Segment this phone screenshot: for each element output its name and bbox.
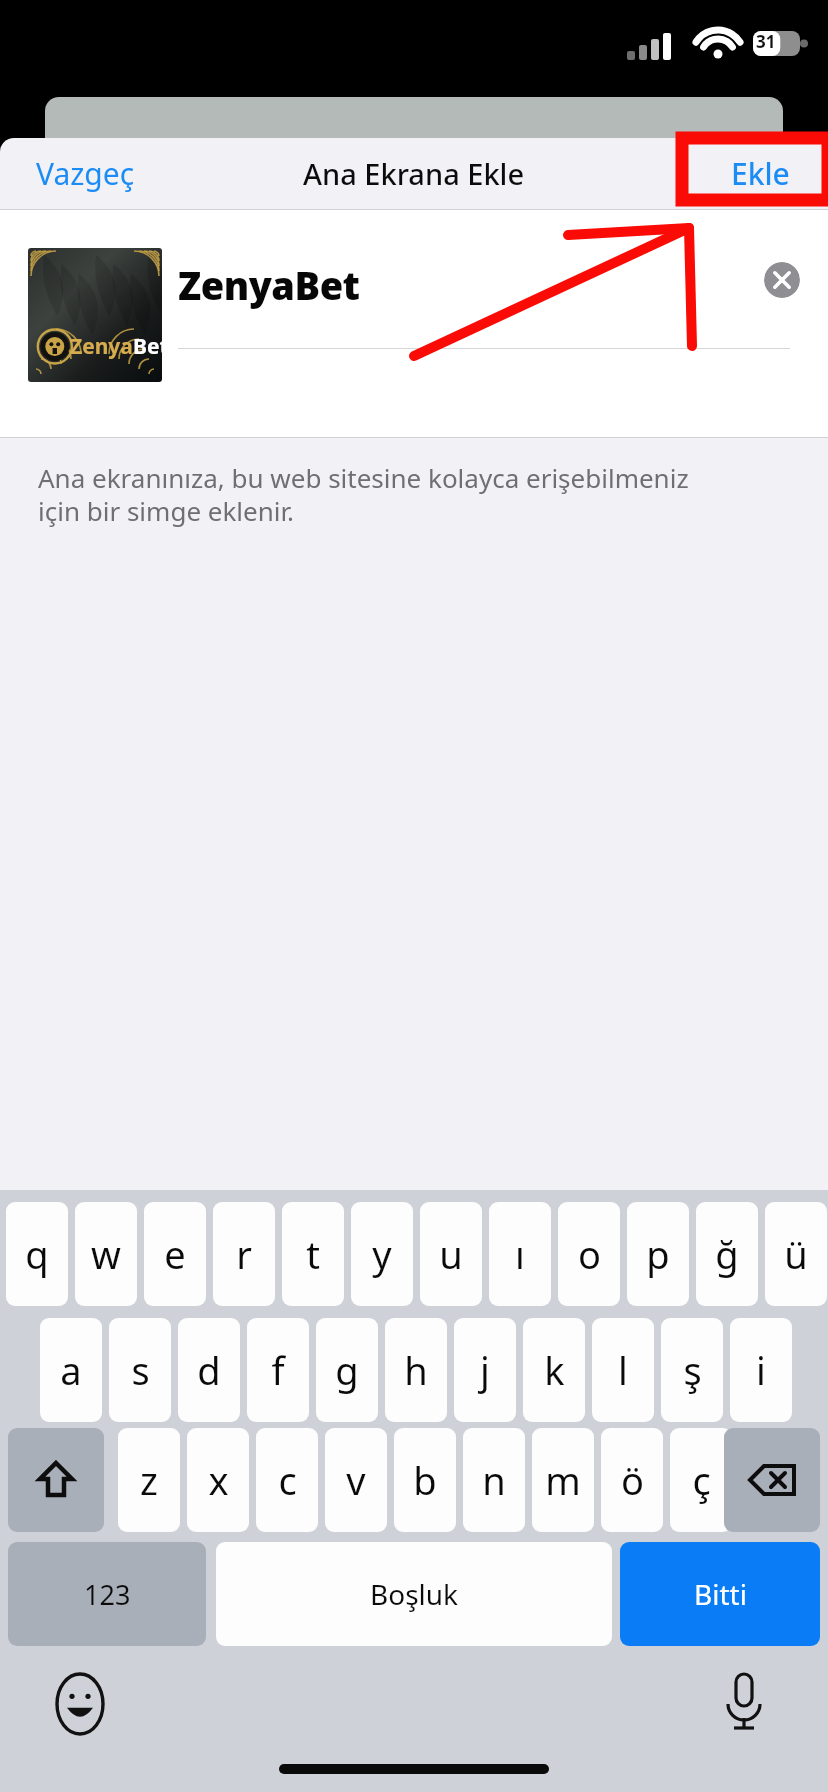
staticText: v: [346, 1454, 366, 1506]
staticText: p: [646, 1228, 670, 1280]
button[interactable]: h: [385, 1318, 447, 1422]
button[interactable]: o: [558, 1202, 620, 1306]
staticText: 31: [756, 30, 776, 53]
button[interactable]: Shift: [8, 1428, 104, 1532]
button[interactable]: j: [454, 1318, 516, 1422]
staticText: t: [306, 1228, 320, 1280]
staticText: n: [482, 1454, 506, 1506]
button[interactable]: Emoji: [48, 1672, 112, 1736]
staticText: s: [131, 1344, 150, 1396]
button[interactable]: a: [40, 1318, 102, 1422]
staticText: e: [164, 1228, 186, 1280]
button[interactable]: Ekle: [713, 143, 808, 204]
staticText: l: [618, 1344, 628, 1396]
button[interactable]: r: [213, 1202, 275, 1306]
staticText: 123: [84, 1576, 131, 1613]
button[interactable]: 123: [8, 1542, 206, 1646]
button[interactable]: z: [118, 1428, 180, 1532]
staticText: z: [140, 1454, 158, 1506]
button[interactable]: t: [282, 1202, 344, 1306]
staticText: ü: [784, 1228, 808, 1280]
staticText: ş: [683, 1344, 702, 1396]
button[interactable]: p: [627, 1202, 689, 1306]
button[interactable]: u: [420, 1202, 482, 1306]
staticText: Ana ekranınıza, bu web sitesine kolayca …: [38, 460, 698, 529]
button[interactable]: Vazgeç: [16, 143, 155, 204]
staticText: a: [60, 1344, 82, 1396]
staticText: h: [404, 1344, 428, 1396]
button[interactable]: Dikte: [712, 1668, 776, 1732]
button[interactable]: d: [178, 1318, 240, 1422]
button[interactable]: ş: [661, 1318, 723, 1422]
staticText: Bet: [133, 332, 162, 361]
button[interactable]: q: [6, 1202, 68, 1306]
staticText: m: [545, 1454, 581, 1506]
button[interactable]: n: [463, 1428, 525, 1532]
button[interactable]: Boşluk: [216, 1542, 612, 1646]
staticText: Boşluk: [370, 1575, 459, 1613]
staticText: Ekle: [731, 153, 790, 194]
button[interactable]: e: [144, 1202, 206, 1306]
staticText: ö: [621, 1454, 644, 1506]
staticText: k: [544, 1344, 565, 1396]
button[interactable]: v: [325, 1428, 387, 1532]
staticText: ZenyaBet: [178, 259, 360, 311]
staticText: o: [578, 1228, 601, 1280]
staticText: w: [91, 1228, 121, 1280]
staticText: Ana Ekrana Ekle: [303, 154, 525, 193]
button[interactable]: m: [532, 1428, 594, 1532]
button[interactable]: Bitti: [620, 1542, 820, 1646]
staticText: ı: [515, 1228, 525, 1280]
staticText: Bitti: [694, 1575, 747, 1613]
button[interactable]: l: [592, 1318, 654, 1422]
staticText: Zenya: [70, 332, 133, 361]
button[interactable]: ı: [489, 1202, 551, 1306]
button[interactable]: y: [351, 1202, 413, 1306]
button[interactable]: Temizle: [764, 262, 800, 298]
staticText: y: [372, 1228, 392, 1280]
staticText: ğ: [715, 1228, 739, 1280]
staticText: i: [756, 1344, 766, 1396]
button[interactable]: f: [247, 1318, 309, 1422]
button[interactable]: g: [316, 1318, 378, 1422]
button[interactable]: k: [523, 1318, 585, 1422]
staticText: f: [271, 1344, 285, 1396]
staticText: d: [197, 1344, 221, 1396]
staticText: b: [413, 1454, 437, 1506]
button[interactable]: i: [730, 1318, 792, 1422]
button[interactable]: x: [187, 1428, 249, 1532]
staticText: Vazgeç: [36, 153, 135, 194]
staticText: j: [480, 1344, 490, 1396]
button[interactable]: ç: [670, 1428, 732, 1532]
staticText: g: [335, 1344, 359, 1396]
button[interactable]: c: [256, 1428, 318, 1532]
staticText: c: [278, 1454, 297, 1506]
staticText: x: [208, 1454, 229, 1506]
button[interactable]: b: [394, 1428, 456, 1532]
staticText: q: [25, 1228, 49, 1280]
button[interactable]: Geri sil: [724, 1428, 820, 1532]
staticText: ç: [692, 1454, 711, 1506]
button[interactable]: ü: [765, 1202, 827, 1306]
button[interactable]: ğ: [696, 1202, 758, 1306]
button[interactable]: s: [109, 1318, 171, 1422]
staticText: u: [439, 1228, 463, 1280]
staticText: r: [236, 1228, 252, 1280]
button[interactable]: w: [75, 1202, 137, 1306]
button[interactable]: ö: [601, 1428, 663, 1532]
